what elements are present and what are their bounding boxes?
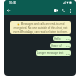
button[interactable]: Call bbox=[60, 7, 67, 14]
staticText: Hello bbox=[54, 37, 61, 41]
button[interactable]: 🔒 Messages and calls are end-to-end encr… bbox=[10, 21, 71, 34]
button[interactable]: More options bbox=[68, 8, 73, 13]
staticText: Longer message text bbox=[37, 51, 64, 55]
staticText: 9:41 bbox=[66, 38, 70, 41]
staticText: 9:41 bbox=[66, 45, 70, 48]
button[interactable]: Back bbox=[5, 7, 11, 13]
button[interactable]: Longer message text bbox=[36, 50, 71, 56]
staticText: 🔒 Messages and calls are end-to-end encr… bbox=[12, 22, 69, 34]
button[interactable]: Video call bbox=[52, 7, 59, 14]
staticText: 9:42 bbox=[66, 53, 70, 56]
button[interactable]: Hello bbox=[53, 36, 71, 41]
staticText: How r u? bbox=[51, 44, 63, 48]
button[interactable]: How r u? bbox=[50, 43, 71, 48]
staticText: 10:30 bbox=[9, 1, 17, 5]
